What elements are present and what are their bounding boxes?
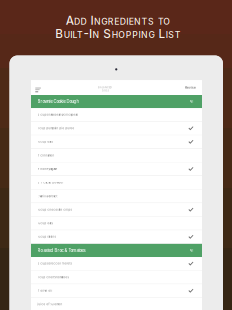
button[interactable]: 1 cup pumpkin pie puree	[31, 122, 202, 135]
staticText: 2 cups broccoli florets	[38, 262, 72, 265]
staticText: ⅓ cup chocolate chips	[38, 208, 72, 211]
button[interactable]: All	[187, 98, 196, 106]
staticText: Roasted Broc & Tomatoes	[38, 248, 86, 253]
staticText: T cinnamon	[38, 154, 55, 157]
staticText: T honey/agave	[38, 167, 58, 171]
staticText: bites	[101, 89, 108, 92]
staticText: ½ cup oats	[38, 140, 53, 143]
button[interactable]: ⅓ cup chocolate chips	[31, 203, 202, 217]
button[interactable]: Revise	[181, 82, 202, 93]
staticText: All	[189, 249, 193, 252]
button[interactable]: ⅓ cup raisins	[31, 230, 202, 244]
staticText: Brownie Cookie Dough	[38, 99, 79, 104]
button[interactable]: All	[187, 247, 196, 254]
staticText: BUILT-IN SHOPPING LIST	[55, 27, 181, 41]
staticText: ⅓ cup oats	[38, 222, 53, 225]
staticText: 2 T cacao powder	[38, 181, 64, 184]
staticText: 1 cup cherry tomatoes	[38, 276, 69, 279]
button[interactable]: juice of ½ lemon	[31, 298, 202, 310]
button[interactable]: 2 cups broccoli florets	[31, 257, 202, 271]
staticText: ⅓ cup raisins	[38, 235, 56, 238]
button[interactable]: 1 cup cherry tomatoes	[31, 271, 202, 284]
staticText: BALANCED	[98, 86, 112, 89]
staticText: ADD INGREDIENTS TO	[66, 14, 170, 27]
button[interactable]: ½ cup oats	[31, 135, 202, 149]
staticText: juice of ½ lemon	[38, 303, 63, 306]
button[interactable]: T cinnamon	[31, 149, 202, 162]
staticText: 2 cups navy beans/chickpeas	[38, 113, 78, 116]
staticText: Revise	[185, 86, 196, 89]
button[interactable]: ⅓ cup oats	[31, 217, 202, 230]
button[interactable]: 2 cups navy beans/chickpeas	[31, 108, 202, 122]
button[interactable]: t vanilla extract	[31, 190, 202, 203]
staticText: t vanilla extract	[38, 194, 58, 198]
button[interactable]: T olive oil	[31, 284, 202, 298]
staticText: 1 cup pumpkin pie puree	[38, 127, 75, 130]
staticText: All	[189, 100, 193, 104]
button[interactable]: T honey/agave	[31, 162, 202, 176]
staticText: T olive oil	[38, 289, 53, 292]
button[interactable]: Menu	[31, 80, 45, 96]
button[interactable]: 2 T cacao powder	[31, 176, 202, 190]
